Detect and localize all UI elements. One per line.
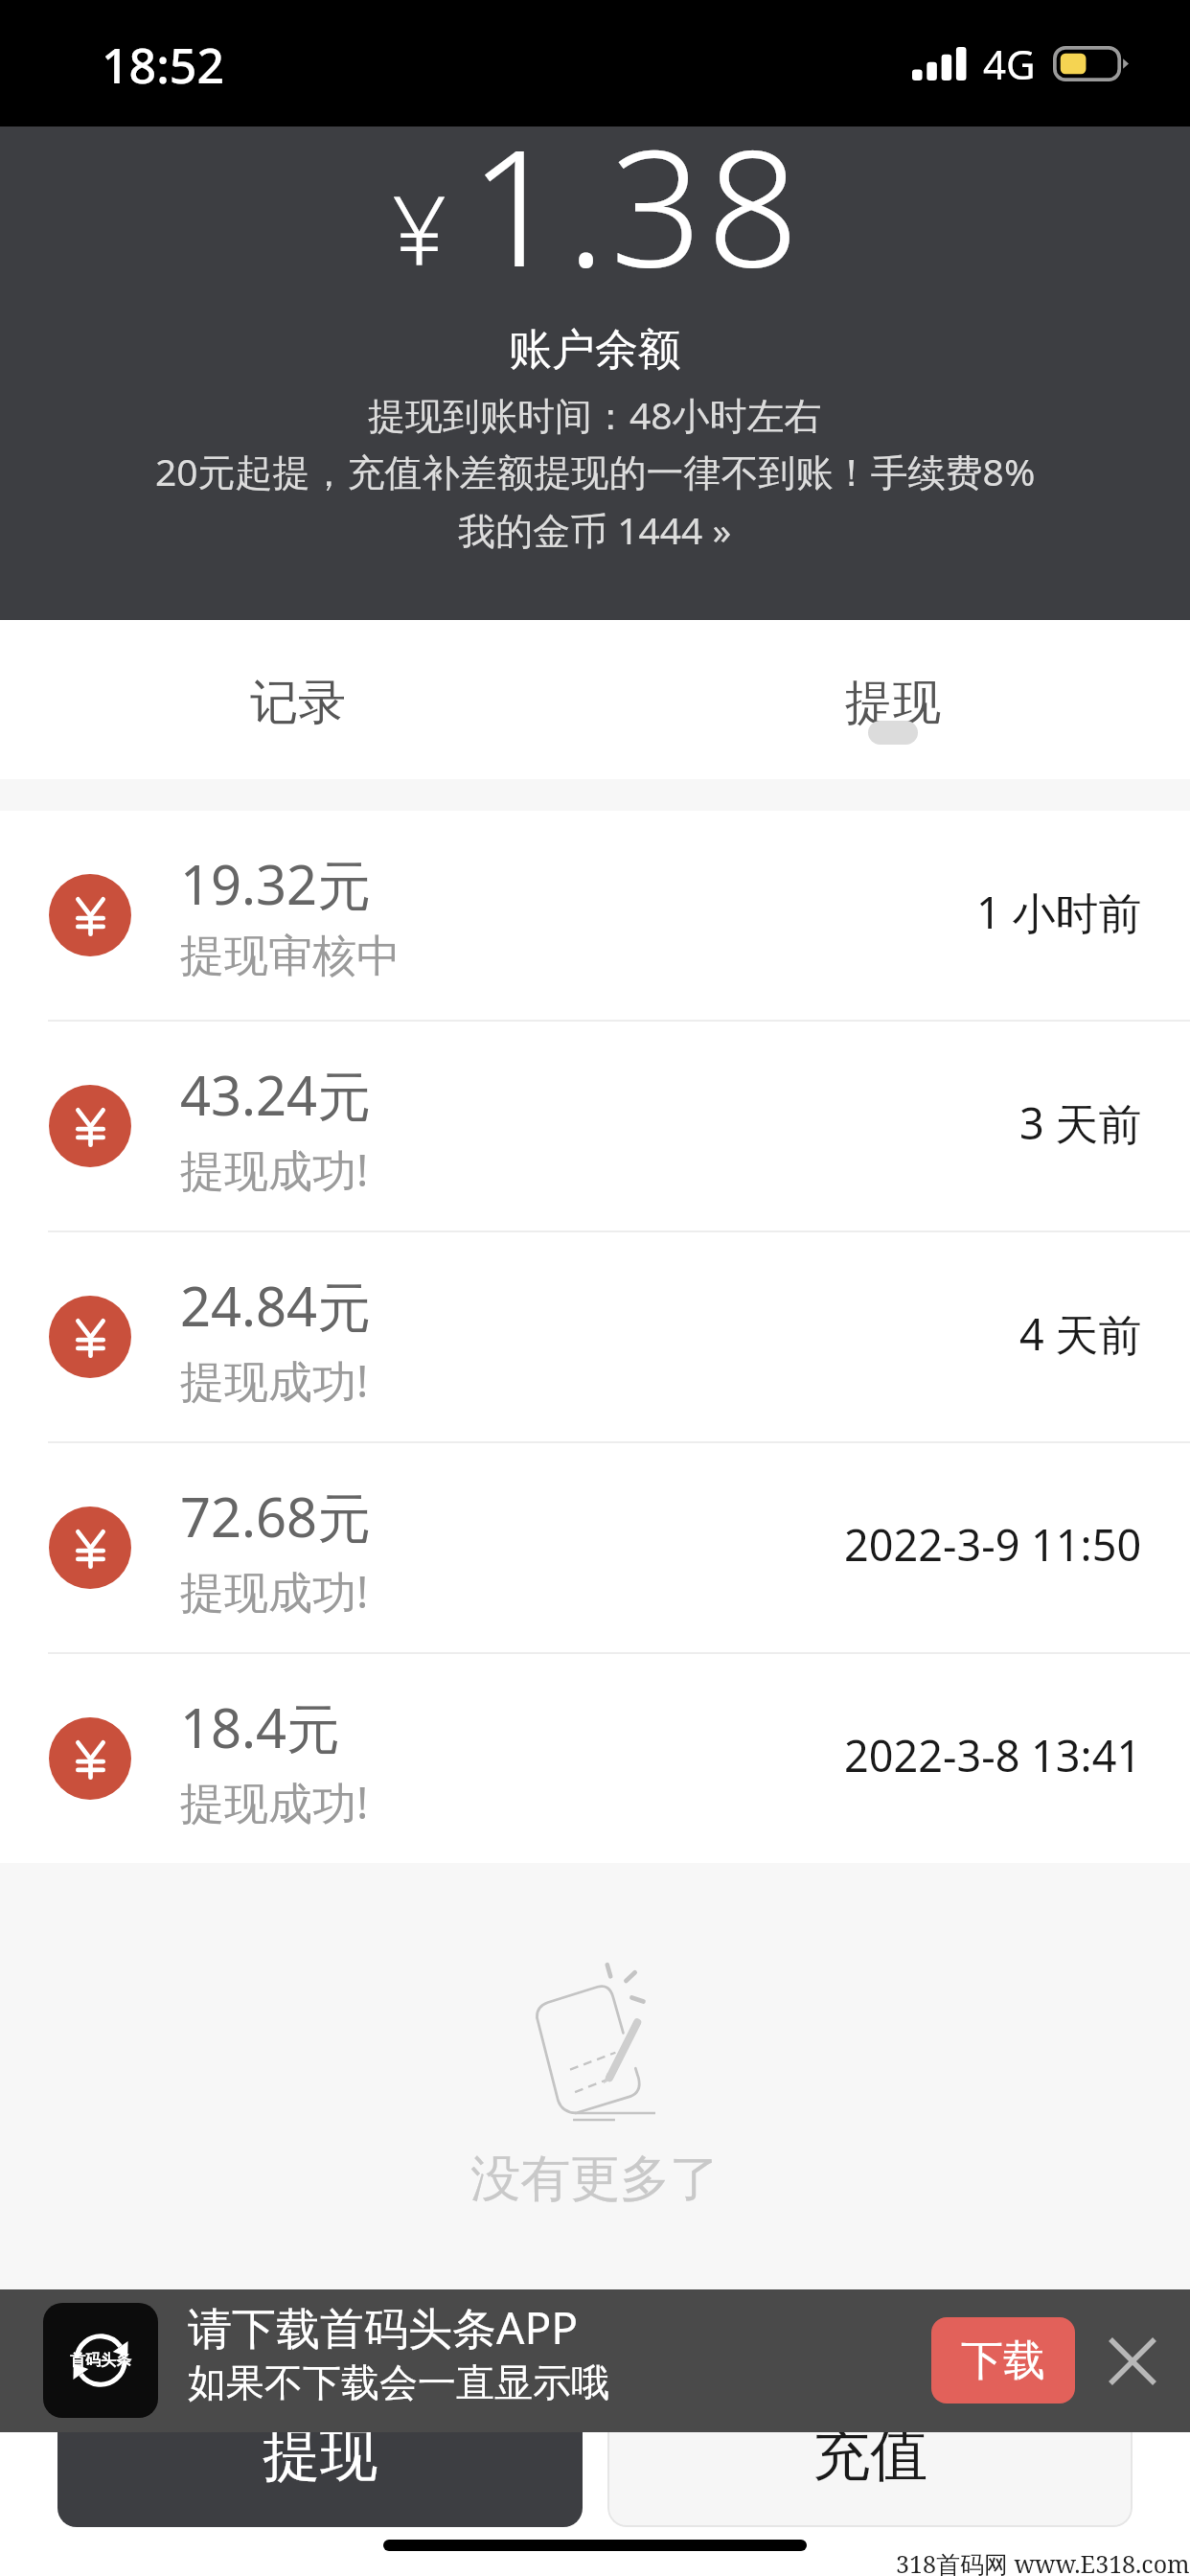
staticText: 提现审核中	[180, 929, 400, 984]
button[interactable]: 18.4元	[0, 1654, 1190, 1863]
staticText: 没有更多了	[470, 2148, 720, 2211]
staticText: 提现成功!	[180, 1350, 369, 1411]
staticText: 首码头条	[70, 2351, 131, 2370]
staticText: 1 小时前	[976, 883, 1142, 941]
staticText: 2022-3-9 11:50	[844, 1515, 1142, 1574]
button[interactable]: 72.68元	[0, 1443, 1190, 1652]
staticText: 1.38	[469, 94, 804, 313]
button[interactable]: 43.24元	[0, 1022, 1190, 1230]
staticText: 如果不下载会一直显示哦	[188, 2358, 609, 2406]
staticText: ¥	[392, 163, 447, 293]
staticText: 4G	[983, 36, 1036, 91]
staticText: 提现成功!	[180, 1561, 369, 1621]
staticText: 提现到账时间：48小时左右	[368, 389, 822, 440]
staticText: 19.32元	[180, 847, 372, 920]
staticText: 3 天前	[1019, 1093, 1142, 1152]
button[interactable]: 提现	[57, 2383, 583, 2527]
staticText: 24.84元	[180, 1269, 372, 1342]
staticText: 提现成功!	[180, 1772, 369, 1832]
staticText: 72.68元	[180, 1480, 372, 1552]
staticText: 2022-3-8 13:41	[844, 1726, 1142, 1784]
staticText: 提现	[263, 2419, 378, 2492]
button[interactable]: 提现	[595, 620, 1190, 779]
staticText: 318首码网 www.E318.com	[896, 2547, 1190, 2576]
button[interactable]: 记录	[0, 620, 595, 779]
staticText: 记录	[250, 673, 346, 733]
staticText: 提现	[845, 673, 941, 733]
staticText: 18:52	[102, 33, 224, 98]
staticText: 20元起提，充值补差额提现的一律不到账！手续费8%	[155, 446, 1036, 496]
staticText: 账户余额	[509, 323, 681, 378]
staticText: 提现成功!	[180, 1139, 369, 1200]
staticText: 43.24元	[180, 1058, 372, 1131]
staticText: 充值	[812, 2419, 927, 2492]
button[interactable]: 充值	[607, 2383, 1133, 2527]
button[interactable]: 24.84元	[0, 1232, 1190, 1441]
button[interactable]: 关闭	[1104, 2333, 1161, 2390]
staticText: 下载	[961, 2334, 1045, 2387]
staticText: 请下载首码头条APP	[188, 2297, 579, 2357]
staticText: 4 天前	[1019, 1304, 1142, 1363]
staticText: 我的金币 1444 »	[458, 504, 732, 555]
button[interactable]: 下载	[931, 2317, 1075, 2403]
button[interactable]: 19.32元	[0, 811, 1190, 1020]
button[interactable]: 我的金币 1444 »	[458, 504, 732, 555]
staticText: 18.4元	[180, 1690, 341, 1763]
